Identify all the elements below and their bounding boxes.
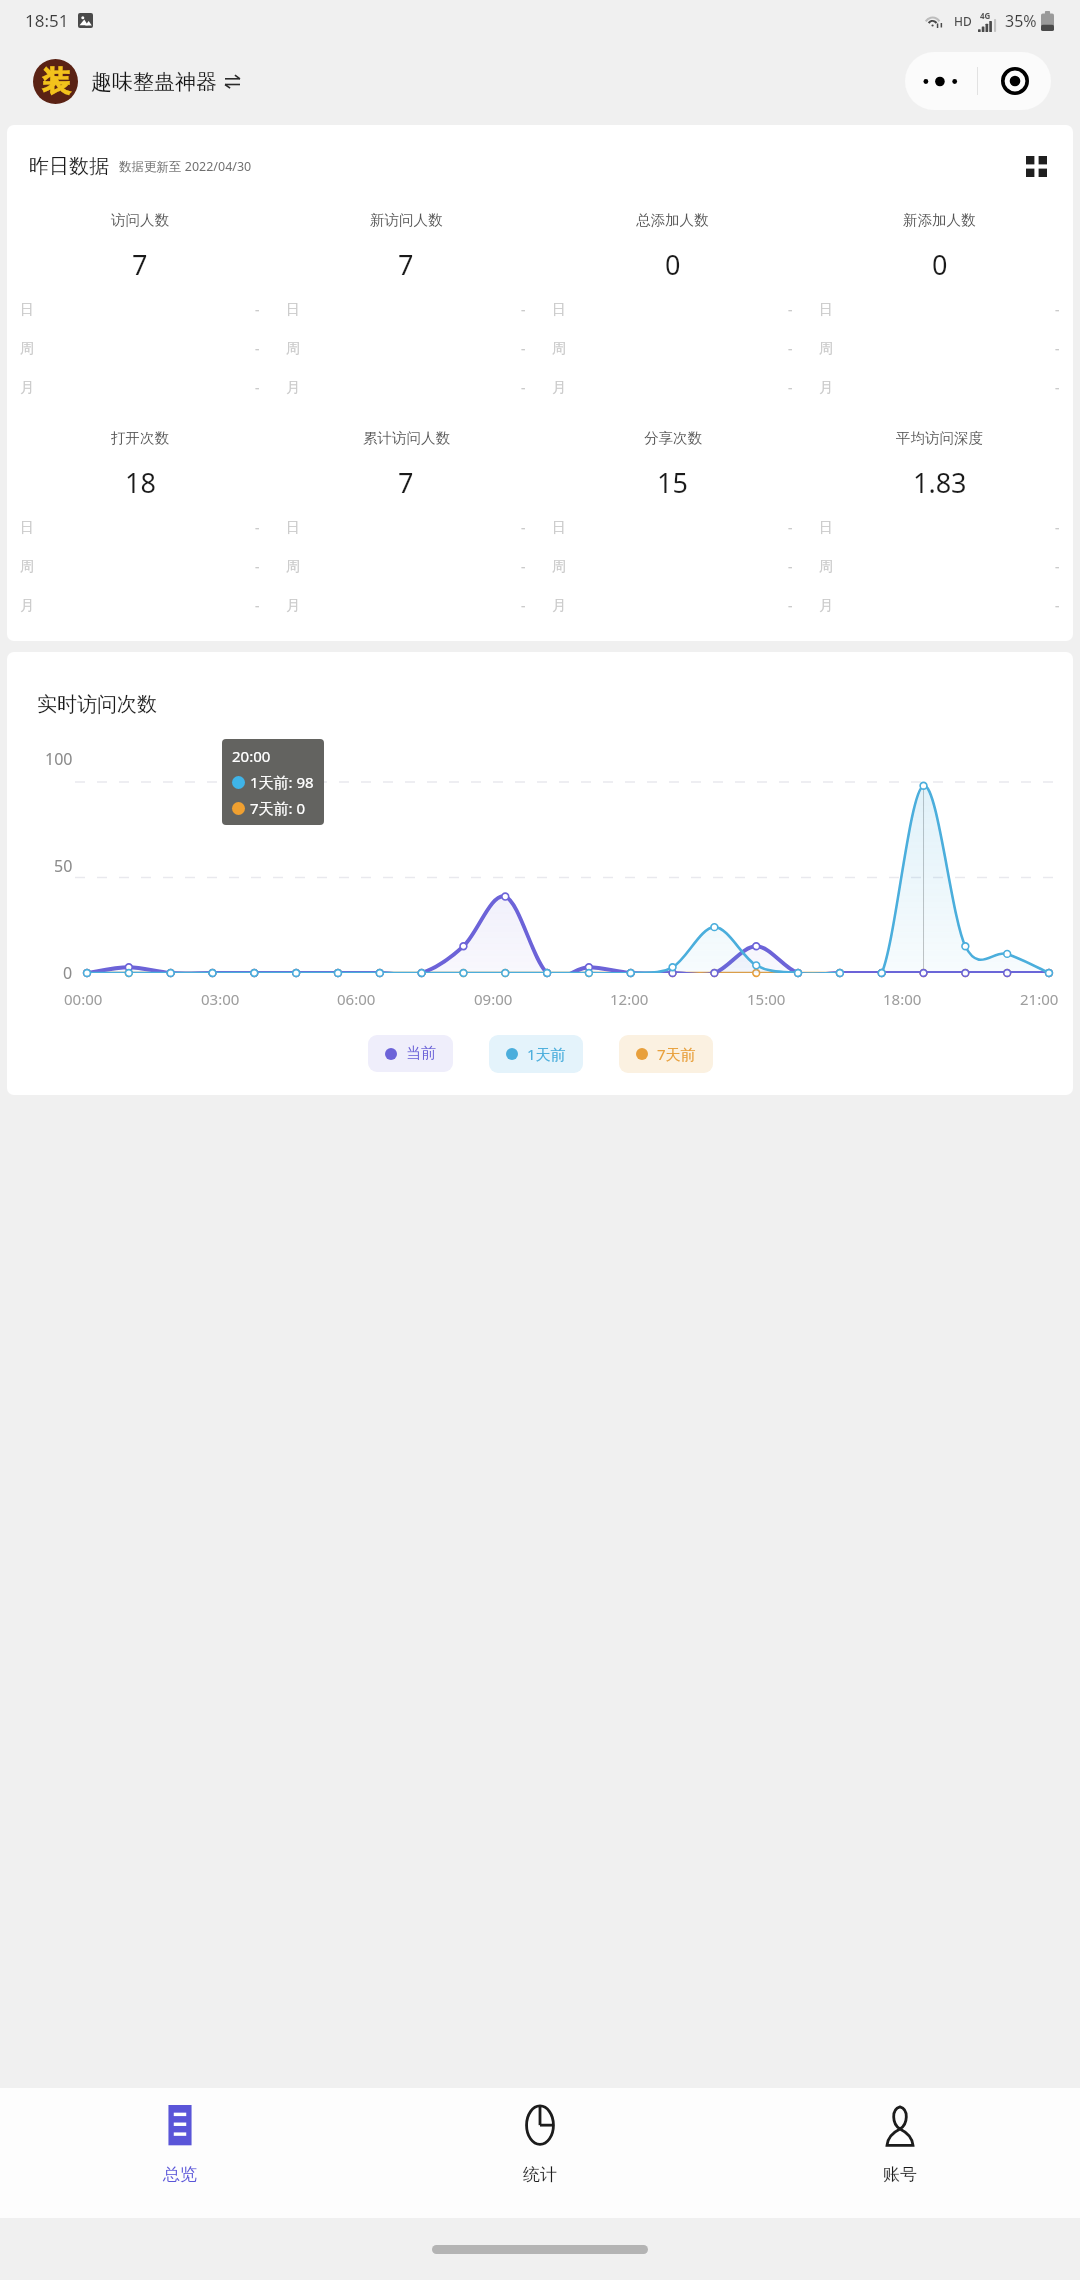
staticText: -: [255, 339, 260, 358]
staticText: 周: [552, 340, 566, 358]
button[interactable]: 账号: [720, 2088, 1080, 2218]
staticText: -: [255, 596, 260, 615]
button[interactable]: 1天前: [489, 1035, 583, 1073]
staticText: 20:00: [232, 746, 271, 766]
staticText: 1天前: [527, 1044, 566, 1064]
button[interactable]: 装: [33, 59, 240, 104]
button[interactable]: More options: [905, 52, 977, 110]
staticText: -: [1055, 557, 1060, 576]
staticText: 日: [552, 519, 566, 537]
staticText: HD: [954, 13, 972, 29]
staticText: -: [788, 596, 793, 615]
staticText: -: [521, 557, 526, 576]
staticText: 新添加人数: [903, 211, 976, 229]
staticText: 7: [398, 464, 414, 501]
button[interactable]: 7天前: [619, 1035, 713, 1073]
staticText: 0: [932, 246, 948, 283]
staticText: 周: [286, 340, 300, 358]
button[interactable]: 当前: [368, 1035, 453, 1072]
staticText: 09:00: [474, 989, 513, 1009]
staticText: -: [788, 300, 793, 319]
staticText: 周: [819, 558, 833, 576]
staticText: 18: [125, 464, 156, 501]
button[interactable]: 访问人数: [7, 211, 273, 417]
staticText: 4G: [980, 10, 991, 21]
staticText: 月: [20, 597, 34, 615]
staticText: 数据更新至 2022/04/30: [119, 158, 252, 175]
staticText: 12:00: [610, 989, 649, 1009]
staticText: 昨日数据: [29, 154, 109, 179]
staticText: 35%: [1005, 10, 1037, 32]
staticText: 平均访问深度: [896, 429, 983, 447]
staticText: -: [788, 378, 793, 397]
staticText: 周: [20, 340, 34, 358]
staticText: 日: [286, 519, 300, 537]
staticText: 0: [63, 962, 73, 984]
button[interactable]: 统计: [360, 2088, 720, 2218]
staticText: -: [788, 557, 793, 576]
staticText: 月: [286, 597, 300, 615]
staticText: 趣味整蛊神器: [91, 69, 217, 95]
staticText: 7: [398, 246, 414, 283]
staticText: 月: [286, 379, 300, 397]
staticText: -: [521, 596, 526, 615]
button[interactable]: 打开次数: [7, 429, 273, 635]
staticText: 实时访问次数: [37, 692, 157, 717]
button[interactable]: 总添加人数: [539, 211, 806, 417]
staticText: 1.83: [913, 464, 967, 501]
staticText: -: [1055, 518, 1060, 537]
staticText: -: [255, 378, 260, 397]
staticText: 7: [132, 246, 148, 283]
staticText: 装: [42, 64, 70, 99]
staticText: 月: [20, 379, 34, 397]
staticText: 日: [552, 301, 566, 319]
staticText: 统计: [523, 2164, 557, 2185]
staticText: 03:00: [201, 989, 240, 1009]
staticText: 月: [552, 379, 566, 397]
staticText: -: [255, 300, 260, 319]
staticText: 周: [286, 558, 300, 576]
staticText: -: [521, 300, 526, 319]
staticText: 0: [665, 246, 681, 283]
staticText: 15: [657, 464, 688, 501]
staticText: -: [521, 339, 526, 358]
button[interactable]: 新访问人数: [273, 211, 539, 417]
staticText: 00:00: [64, 989, 103, 1009]
staticText: 日: [819, 301, 833, 319]
button[interactable]: Switch layout: [1019, 149, 1053, 183]
staticText: -: [521, 518, 526, 537]
staticText: 总览: [163, 2164, 197, 2185]
staticText: 新访问人数: [370, 211, 443, 229]
staticText: -: [788, 339, 793, 358]
staticText: 累计访问人数: [363, 429, 450, 447]
button[interactable]: 平均访问深度: [806, 429, 1073, 635]
staticText: 日: [20, 519, 34, 537]
staticText: 周: [819, 340, 833, 358]
staticText: 日: [20, 301, 34, 319]
staticText: -: [255, 518, 260, 537]
staticText: 当前: [406, 1044, 436, 1063]
staticText: 日: [286, 301, 300, 319]
staticText: 日: [819, 519, 833, 537]
button[interactable]: Close mini program: [978, 52, 1051, 110]
staticText: 周: [20, 558, 34, 576]
staticText: -: [255, 557, 260, 576]
staticText: 周: [552, 558, 566, 576]
staticText: 7天前: 0: [250, 798, 306, 818]
staticText: -: [1055, 596, 1060, 615]
staticText: 21:00: [1020, 989, 1059, 1009]
button[interactable]: 总览: [0, 2088, 360, 2218]
staticText: -: [1055, 378, 1060, 397]
staticText: 账号: [883, 2164, 917, 2185]
staticText: 18:00: [883, 989, 922, 1009]
button[interactable]: 分享次数: [539, 429, 806, 635]
button[interactable]: 累计访问人数: [273, 429, 539, 635]
staticText: 月: [819, 597, 833, 615]
staticText: -: [788, 518, 793, 537]
staticText: 月: [819, 379, 833, 397]
staticText: -: [1055, 339, 1060, 358]
staticText: 打开次数: [111, 429, 169, 447]
staticText: 月: [552, 597, 566, 615]
staticText: 50: [54, 855, 73, 877]
button[interactable]: 新添加人数: [806, 211, 1073, 417]
